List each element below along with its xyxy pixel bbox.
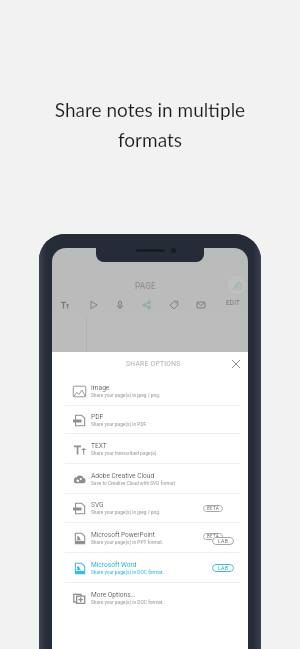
button[interactable]: Record [113, 298, 127, 312]
button[interactable]: Share [140, 298, 154, 312]
staticText: BETA [207, 506, 219, 511]
staticText: Share your page(s) in PDF. [91, 422, 147, 428]
button[interactable]: EDIT [226, 299, 241, 307]
staticText: Share your page(s) in PPT format. [91, 540, 164, 546]
staticText: SVG [91, 501, 104, 509]
button[interactable]: SVG [52, 493, 248, 523]
button[interactable]: Edit page [228, 276, 246, 294]
staticText: Microsoft Word [91, 561, 137, 569]
staticText: PDF [91, 413, 104, 421]
staticText: EDIT [226, 299, 241, 307]
staticText: BETA [207, 534, 219, 539]
staticText: Share your page(s) in jpeg / png. [91, 510, 161, 516]
button[interactable]: Close [228, 356, 244, 372]
button[interactable]: Text style [58, 298, 72, 312]
button[interactable]: More Options… [52, 583, 248, 613]
staticText: Share your transcribed page(s). [91, 451, 158, 457]
staticText: Save to Creative Cloud with SVG format [91, 481, 175, 487]
staticText: LAB [218, 565, 229, 571]
button[interactable]: Play [87, 298, 101, 312]
staticText: LAB [218, 538, 229, 544]
button[interactable]: Microsoft PowerPoint [52, 523, 248, 553]
button[interactable]: TEXT [52, 434, 248, 464]
button[interactable]: PDF [52, 406, 248, 434]
staticText: Image [91, 384, 110, 392]
staticText: More Options… [91, 591, 136, 599]
button[interactable]: Tag [167, 298, 181, 312]
staticText: Adobe Creative Cloud [91, 472, 155, 480]
staticText: SHARE OPTIONS [126, 360, 181, 368]
staticText: Microsoft PowerPoint [91, 531, 155, 539]
button[interactable]: Microsoft Word [52, 553, 248, 583]
staticText: TEXT [91, 442, 107, 450]
staticText: PAGE [135, 281, 156, 291]
staticText: Share notes in multiple formats [0, 98, 300, 151]
staticText: Share your page(s) in jpeg / png. [91, 393, 161, 399]
button[interactable]: Move to [194, 298, 208, 312]
button[interactable]: Adobe Creative Cloud [52, 464, 248, 494]
button[interactable]: Image [52, 376, 248, 406]
staticText: Share your page(s) in DOC format. [91, 600, 164, 606]
staticText: Share your page(s) in DOC format. [91, 570, 164, 576]
